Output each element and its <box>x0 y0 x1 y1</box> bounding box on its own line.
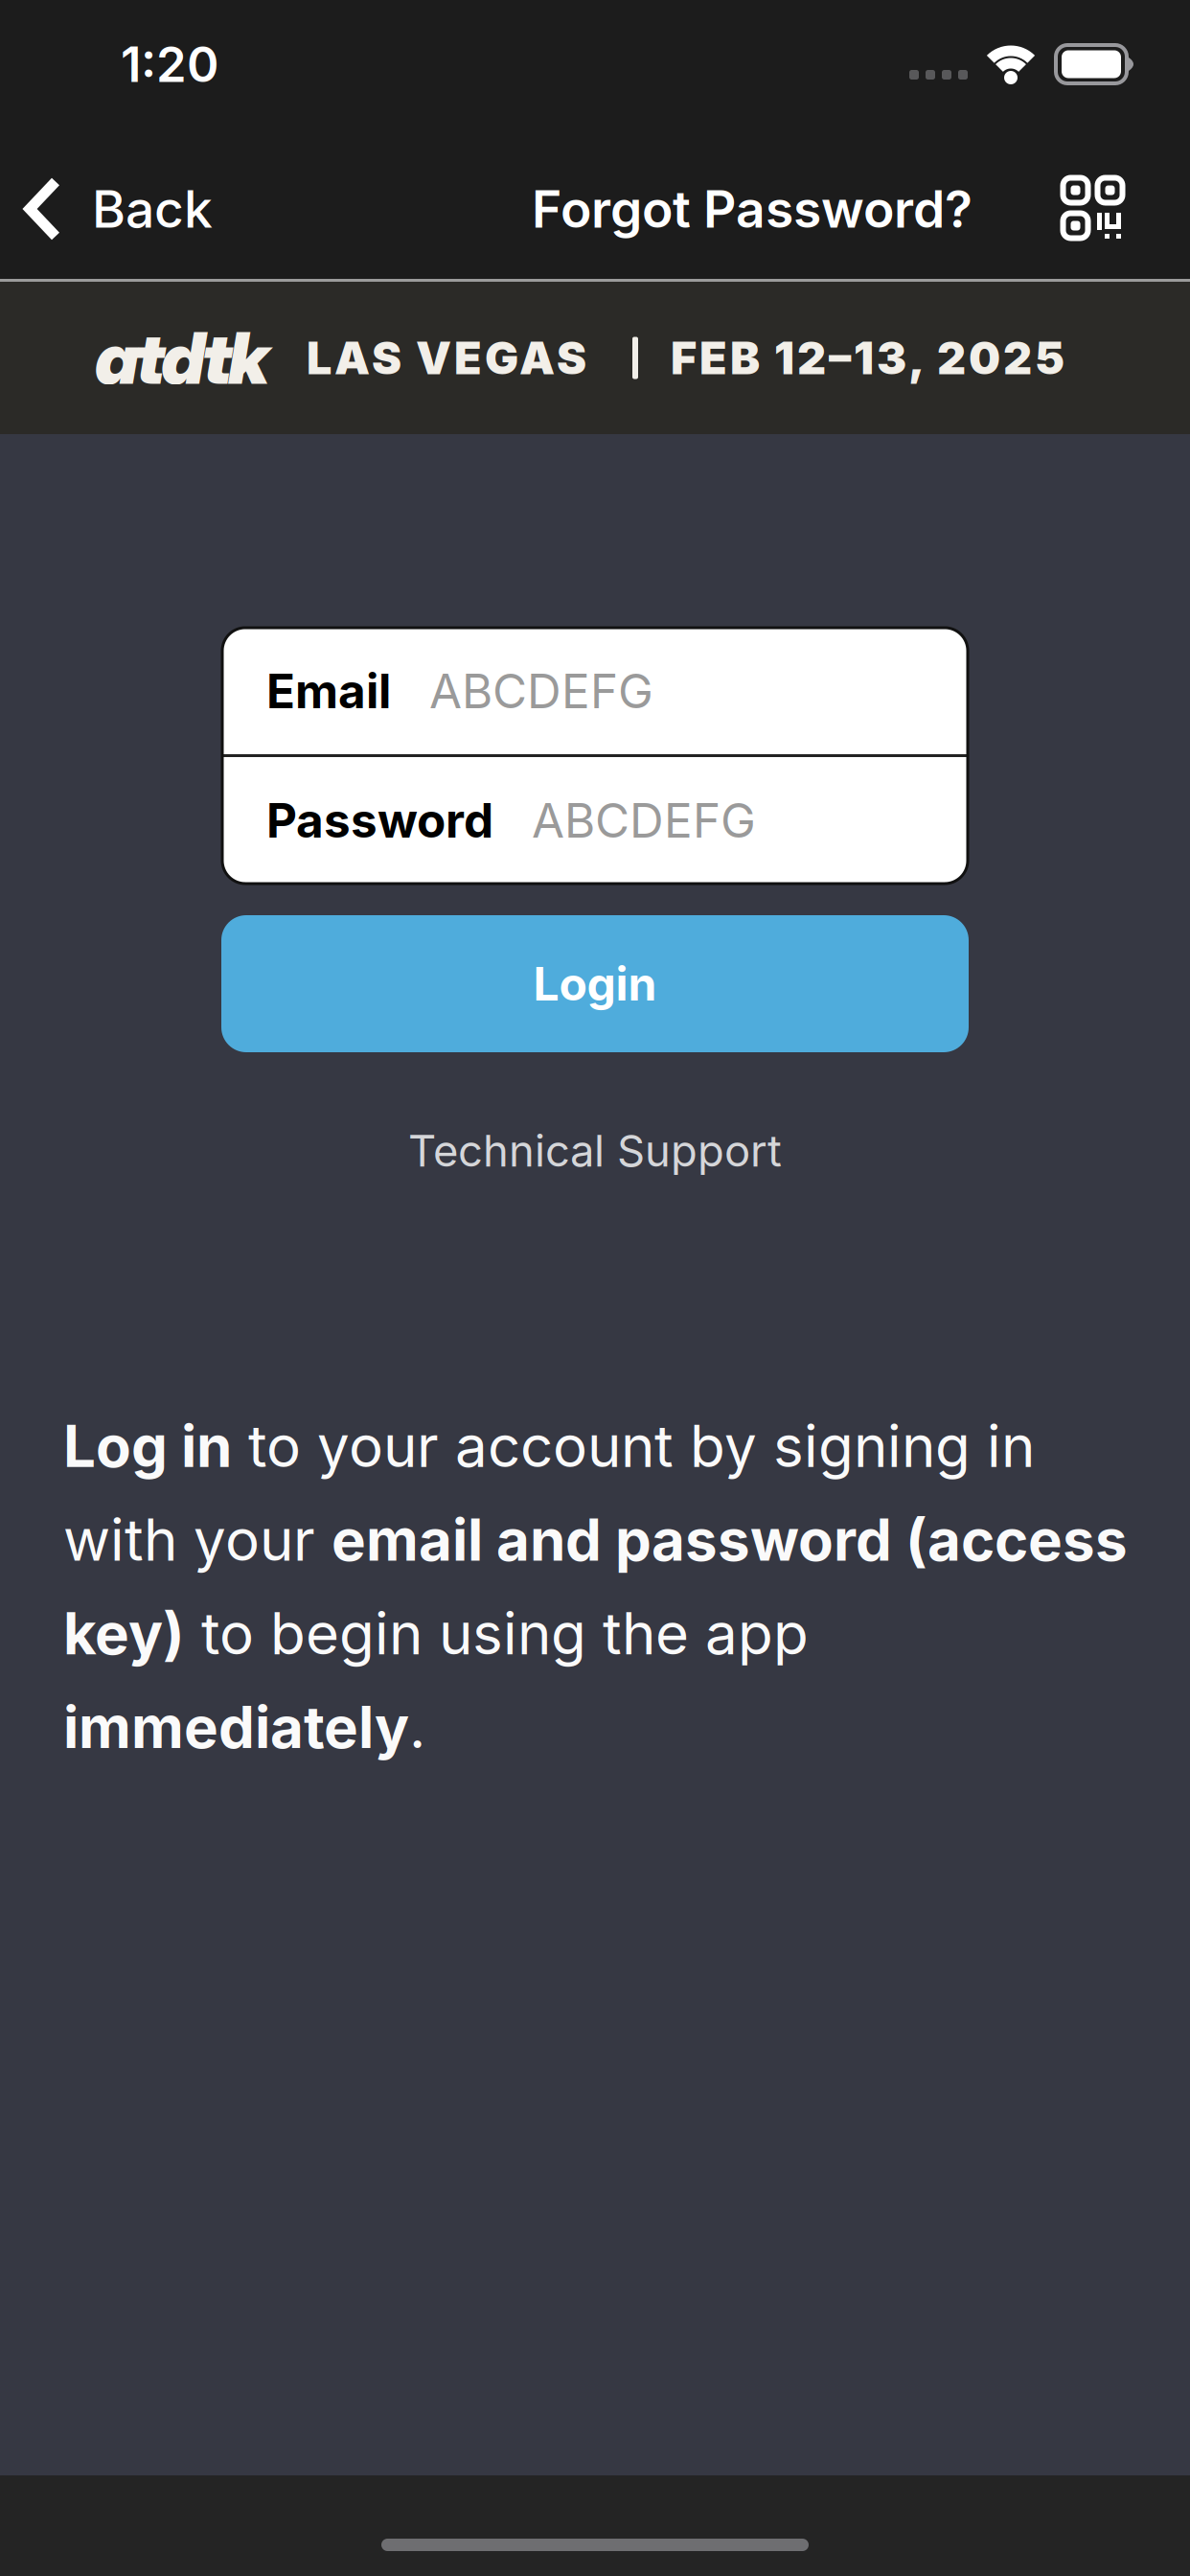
staticText: Technical Support <box>408 1125 782 1176</box>
staticText: Log in to your account by signing in <box>63 1412 1035 1480</box>
staticText: with your email and password (access <box>63 1506 1128 1574</box>
staticText: Forgot Password? <box>532 179 973 239</box>
button[interactable]: Email <box>222 628 968 754</box>
staticText: Login <box>533 957 657 1011</box>
button[interactable]: Forgot Password? <box>532 179 973 239</box>
staticText: FEB 12–13, 2025 <box>671 332 1064 384</box>
staticText: key) to begin using the app <box>63 1599 809 1667</box>
staticText: atdtk <box>95 315 269 401</box>
staticText: immediately. <box>63 1693 425 1761</box>
staticText: Back <box>92 179 213 239</box>
staticText: ABCDEFG <box>532 792 756 848</box>
button[interactable]: Back <box>0 179 213 239</box>
staticText: LAS VEGAS <box>307 332 586 384</box>
button[interactable]: Technical Support <box>408 1125 782 1176</box>
staticText: ABCDEFG <box>429 663 653 719</box>
button[interactable]: Password <box>222 757 968 884</box>
staticText: Password <box>266 792 493 848</box>
button[interactable]: Scan QR Code <box>1063 177 1123 241</box>
button[interactable]: Login <box>221 915 969 1052</box>
staticText: Email <box>266 663 391 719</box>
staticText: 1:20 <box>121 36 218 93</box>
